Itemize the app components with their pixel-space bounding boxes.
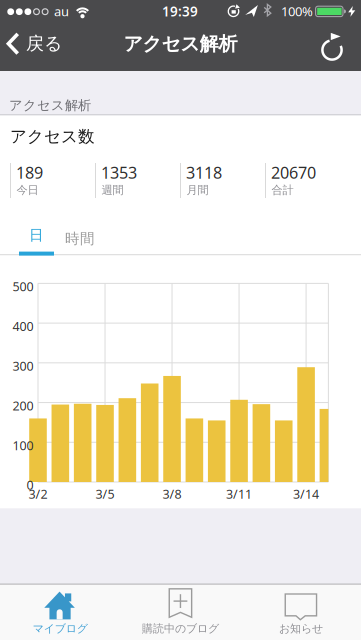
- staticText: 19:39: [162, 2, 198, 20]
- button[interactable]: マイブログ: [0, 584, 120, 640]
- staticText: 200: [12, 397, 33, 414]
- staticText: 400: [12, 318, 33, 335]
- staticText: お知らせ: [279, 622, 323, 636]
- staticText: 3/5: [95, 485, 114, 502]
- staticText: 3/14: [293, 485, 319, 502]
- staticText: 週間: [101, 183, 123, 197]
- staticText: 100%: [281, 2, 313, 20]
- staticText: 500: [12, 278, 33, 295]
- button[interactable]: 戻る: [0, 22, 70, 66]
- staticText: アクセス解析: [123, 32, 237, 56]
- staticText: 戻る: [26, 32, 62, 55]
- staticText: 100: [12, 437, 33, 454]
- staticText: 今日: [16, 183, 38, 197]
- staticText: 300: [12, 357, 33, 374]
- staticText: 日: [29, 226, 44, 244]
- staticText: 0: [26, 476, 33, 493]
- staticText: アクセス数: [10, 126, 95, 147]
- staticText: 3118: [186, 161, 222, 184]
- button[interactable]: 時間: [58, 222, 102, 256]
- staticText: アクセス解析: [9, 97, 91, 114]
- staticText: 購読中のブログ: [142, 622, 219, 636]
- staticText: au: [54, 2, 69, 20]
- button[interactable]: 購読中のブログ: [120, 584, 241, 640]
- staticText: 3/2: [28, 485, 47, 502]
- staticText: 189: [16, 161, 43, 184]
- staticText: 時間: [65, 230, 95, 248]
- staticText: 合計: [271, 183, 293, 197]
- button[interactable]: [312, 22, 352, 66]
- button[interactable]: お知らせ: [241, 584, 361, 640]
- staticText: 1353: [101, 161, 137, 184]
- button[interactable]: 日: [19, 222, 54, 256]
- staticText: 3/11: [226, 485, 252, 502]
- staticText: 3/8: [162, 485, 181, 502]
- staticText: 20670: [271, 161, 316, 184]
- staticText: 月間: [186, 183, 208, 197]
- staticText: マイブログ: [33, 622, 88, 636]
